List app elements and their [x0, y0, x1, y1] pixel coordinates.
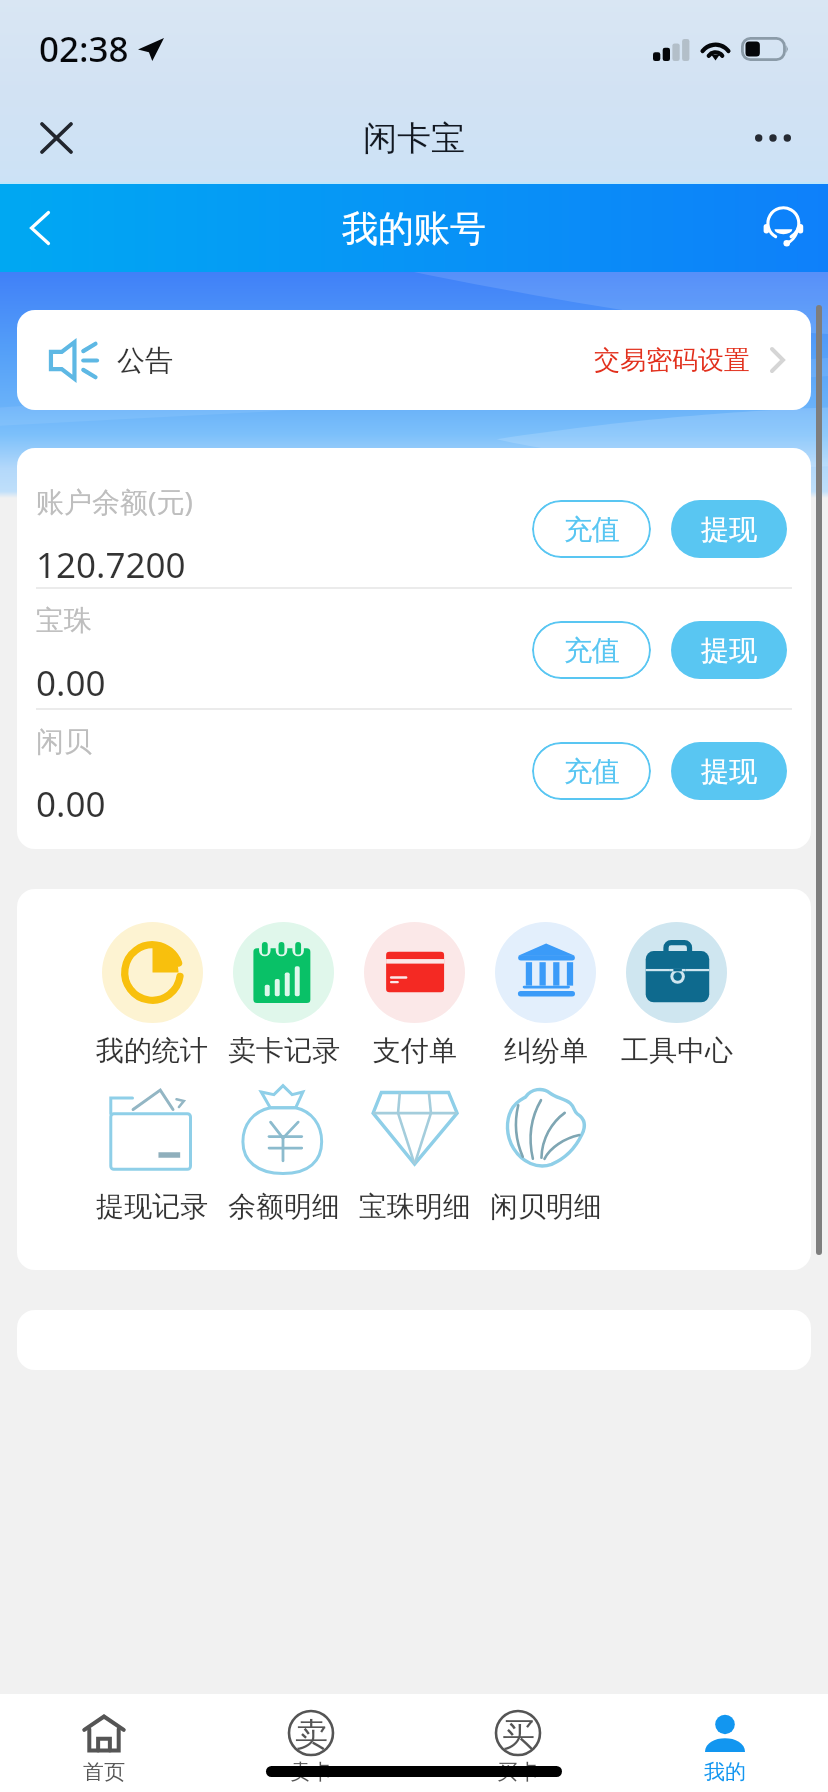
staticText: 卖卡记录 [228, 1033, 340, 1068]
staticText: 充值 [564, 633, 620, 668]
staticText: 闲贝 [36, 724, 92, 759]
staticText: 闲贝明细 [490, 1189, 602, 1224]
staticText: 余额明细 [228, 1189, 340, 1224]
button[interactable]: 买 [414, 1714, 621, 1785]
button[interactable]: 工具中心 [611, 922, 742, 1068]
staticText: 我的账号 [342, 206, 486, 251]
staticText: 支付单 [373, 1033, 457, 1068]
staticText: 卖 [295, 1714, 328, 1752]
button[interactable]: 我的统计 [86, 922, 218, 1068]
button[interactable]: 卖卡记录 [218, 922, 349, 1068]
button[interactable]: 支付单 [349, 922, 480, 1068]
staticText: 卖卡 [290, 1759, 332, 1785]
button[interactable]: 提现 [671, 621, 787, 679]
staticText: 0.00 [36, 659, 106, 707]
staticText: 我的 [704, 1759, 746, 1785]
button[interactable]: Close [26, 108, 86, 168]
button[interactable]: 提现 [671, 742, 787, 800]
staticText: 充值 [564, 754, 620, 789]
button[interactable]: 闲贝明细 [480, 1078, 611, 1224]
staticText: 账户余额(元) [36, 482, 193, 520]
staticText: 闲卡宝 [363, 117, 465, 160]
button[interactable]: Customer service [755, 200, 811, 256]
staticText: 纠纷单 [504, 1033, 588, 1068]
button[interactable]: 纠纷单 [480, 922, 611, 1068]
staticText: 买 [502, 1714, 535, 1752]
staticText: 0.00 [36, 780, 106, 828]
button[interactable]: 充值 [532, 621, 651, 679]
staticText: 提现 [701, 633, 757, 668]
button[interactable]: 宝珠明细 [349, 1078, 480, 1224]
staticText: 120.7200 [36, 541, 186, 589]
staticText: 提现记录 [96, 1189, 208, 1224]
button[interactable]: 提现 [671, 500, 787, 558]
button[interactable]: 提现记录 [86, 1078, 218, 1224]
staticText: 宝珠明细 [359, 1189, 471, 1224]
button[interactable]: 卖 [207, 1714, 414, 1785]
staticText: 02:38 [39, 25, 129, 73]
button[interactable]: 我的 [621, 1714, 828, 1785]
staticText: 公告 [117, 343, 173, 378]
staticText: 提现 [701, 512, 757, 547]
button[interactable]: 充值 [532, 742, 651, 800]
staticText: 交易密码设置 [594, 344, 750, 377]
staticText: 买卡 [497, 1759, 539, 1785]
staticText: 工具中心 [621, 1033, 733, 1068]
staticText: 首页 [83, 1759, 125, 1785]
button[interactable]: More options [743, 108, 803, 168]
staticText: 我的统计 [96, 1033, 208, 1068]
staticText: 宝珠 [36, 603, 92, 638]
button[interactable]: 余额明细 [218, 1078, 349, 1224]
staticText: 提现 [701, 754, 757, 789]
button[interactable]: 首页 [0, 1714, 207, 1785]
button[interactable]: 充值 [532, 500, 651, 558]
staticText: 充值 [564, 512, 620, 547]
button[interactable]: 公告 [17, 310, 811, 410]
button[interactable]: Back [9, 197, 71, 259]
